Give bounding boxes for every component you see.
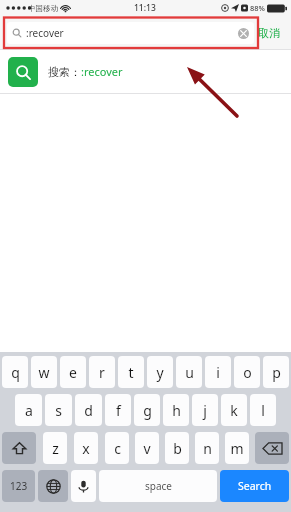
button[interactable]: c <box>105 432 129 464</box>
button[interactable]: t <box>118 356 144 388</box>
button[interactable]: n <box>195 432 219 464</box>
staticText: r <box>99 363 105 382</box>
button[interactable]: g <box>134 394 160 426</box>
staticText: t <box>128 363 134 382</box>
button[interactable]: i <box>205 356 231 388</box>
staticText: z <box>52 439 59 458</box>
button[interactable]: l <box>250 394 276 426</box>
staticText: h <box>172 401 181 420</box>
button[interactable]: k <box>221 394 247 426</box>
staticText: p <box>272 363 281 382</box>
staticText: j <box>203 401 207 420</box>
staticText: i <box>216 363 220 382</box>
button[interactable]: Delete <box>255 432 289 464</box>
staticText: x <box>82 439 90 458</box>
staticText: c <box>114 439 121 458</box>
button[interactable]: z <box>43 432 67 464</box>
button[interactable]: Dictate <box>71 470 96 502</box>
staticText: v <box>143 439 151 458</box>
button[interactable]: a <box>15 394 42 426</box>
button[interactable]: r <box>89 356 115 388</box>
staticText: l <box>261 401 265 420</box>
button[interactable]: :recover <box>7 22 254 44</box>
button[interactable]: 取消 <box>254 23 284 43</box>
button[interactable]: y <box>147 356 173 388</box>
staticText: Search <box>238 479 272 493</box>
staticText: n <box>203 439 212 458</box>
button[interactable]: w <box>31 356 57 388</box>
button[interactable]: f <box>105 394 131 426</box>
staticText: k <box>230 401 238 420</box>
button[interactable]: space <box>99 470 217 502</box>
button[interactable]: Shift <box>2 432 36 464</box>
button[interactable]: Change keyboard <box>38 470 68 502</box>
staticText: 取消 <box>258 26 280 40</box>
button[interactable]: Search <box>220 470 289 502</box>
staticText: 11:13 <box>134 2 156 14</box>
button[interactable]: h <box>163 394 189 426</box>
staticText: w <box>38 363 50 382</box>
button[interactable]: u <box>176 356 202 388</box>
staticText: 中国移动 <box>28 4 58 13</box>
button[interactable]: s <box>45 394 72 426</box>
button[interactable]: x <box>74 432 98 464</box>
staticText: :recover <box>26 26 64 40</box>
staticText: f <box>116 401 121 420</box>
staticText: b <box>173 439 182 458</box>
button[interactable]: d <box>75 394 102 426</box>
button[interactable]: m <box>225 432 249 464</box>
button[interactable]: e <box>60 356 86 388</box>
button[interactable]: o <box>234 356 260 388</box>
staticText: :recover <box>81 64 123 79</box>
staticText: s <box>55 401 62 420</box>
staticText: e <box>69 363 77 382</box>
button[interactable]: j <box>192 394 218 426</box>
button[interactable]: 搜索： <box>0 50 291 93</box>
staticText: a <box>25 401 33 420</box>
staticText: d <box>84 401 93 420</box>
button[interactable]: v <box>135 432 159 464</box>
staticText: o <box>243 363 252 382</box>
button[interactable]: q <box>2 356 28 388</box>
staticText: y <box>156 363 164 382</box>
staticText: 123 <box>10 479 28 493</box>
button[interactable]: p <box>263 356 289 388</box>
staticText: g <box>143 401 152 420</box>
button[interactable]: b <box>165 432 189 464</box>
button[interactable]: Clear text <box>237 27 249 39</box>
staticText: u <box>185 363 194 382</box>
staticText: 搜索： <box>48 65 81 79</box>
staticText: 88% <box>250 3 265 13</box>
button[interactable]: 123 <box>2 470 35 502</box>
staticText: m <box>230 439 244 458</box>
staticText: q <box>11 363 20 382</box>
staticText: space <box>145 479 172 493</box>
